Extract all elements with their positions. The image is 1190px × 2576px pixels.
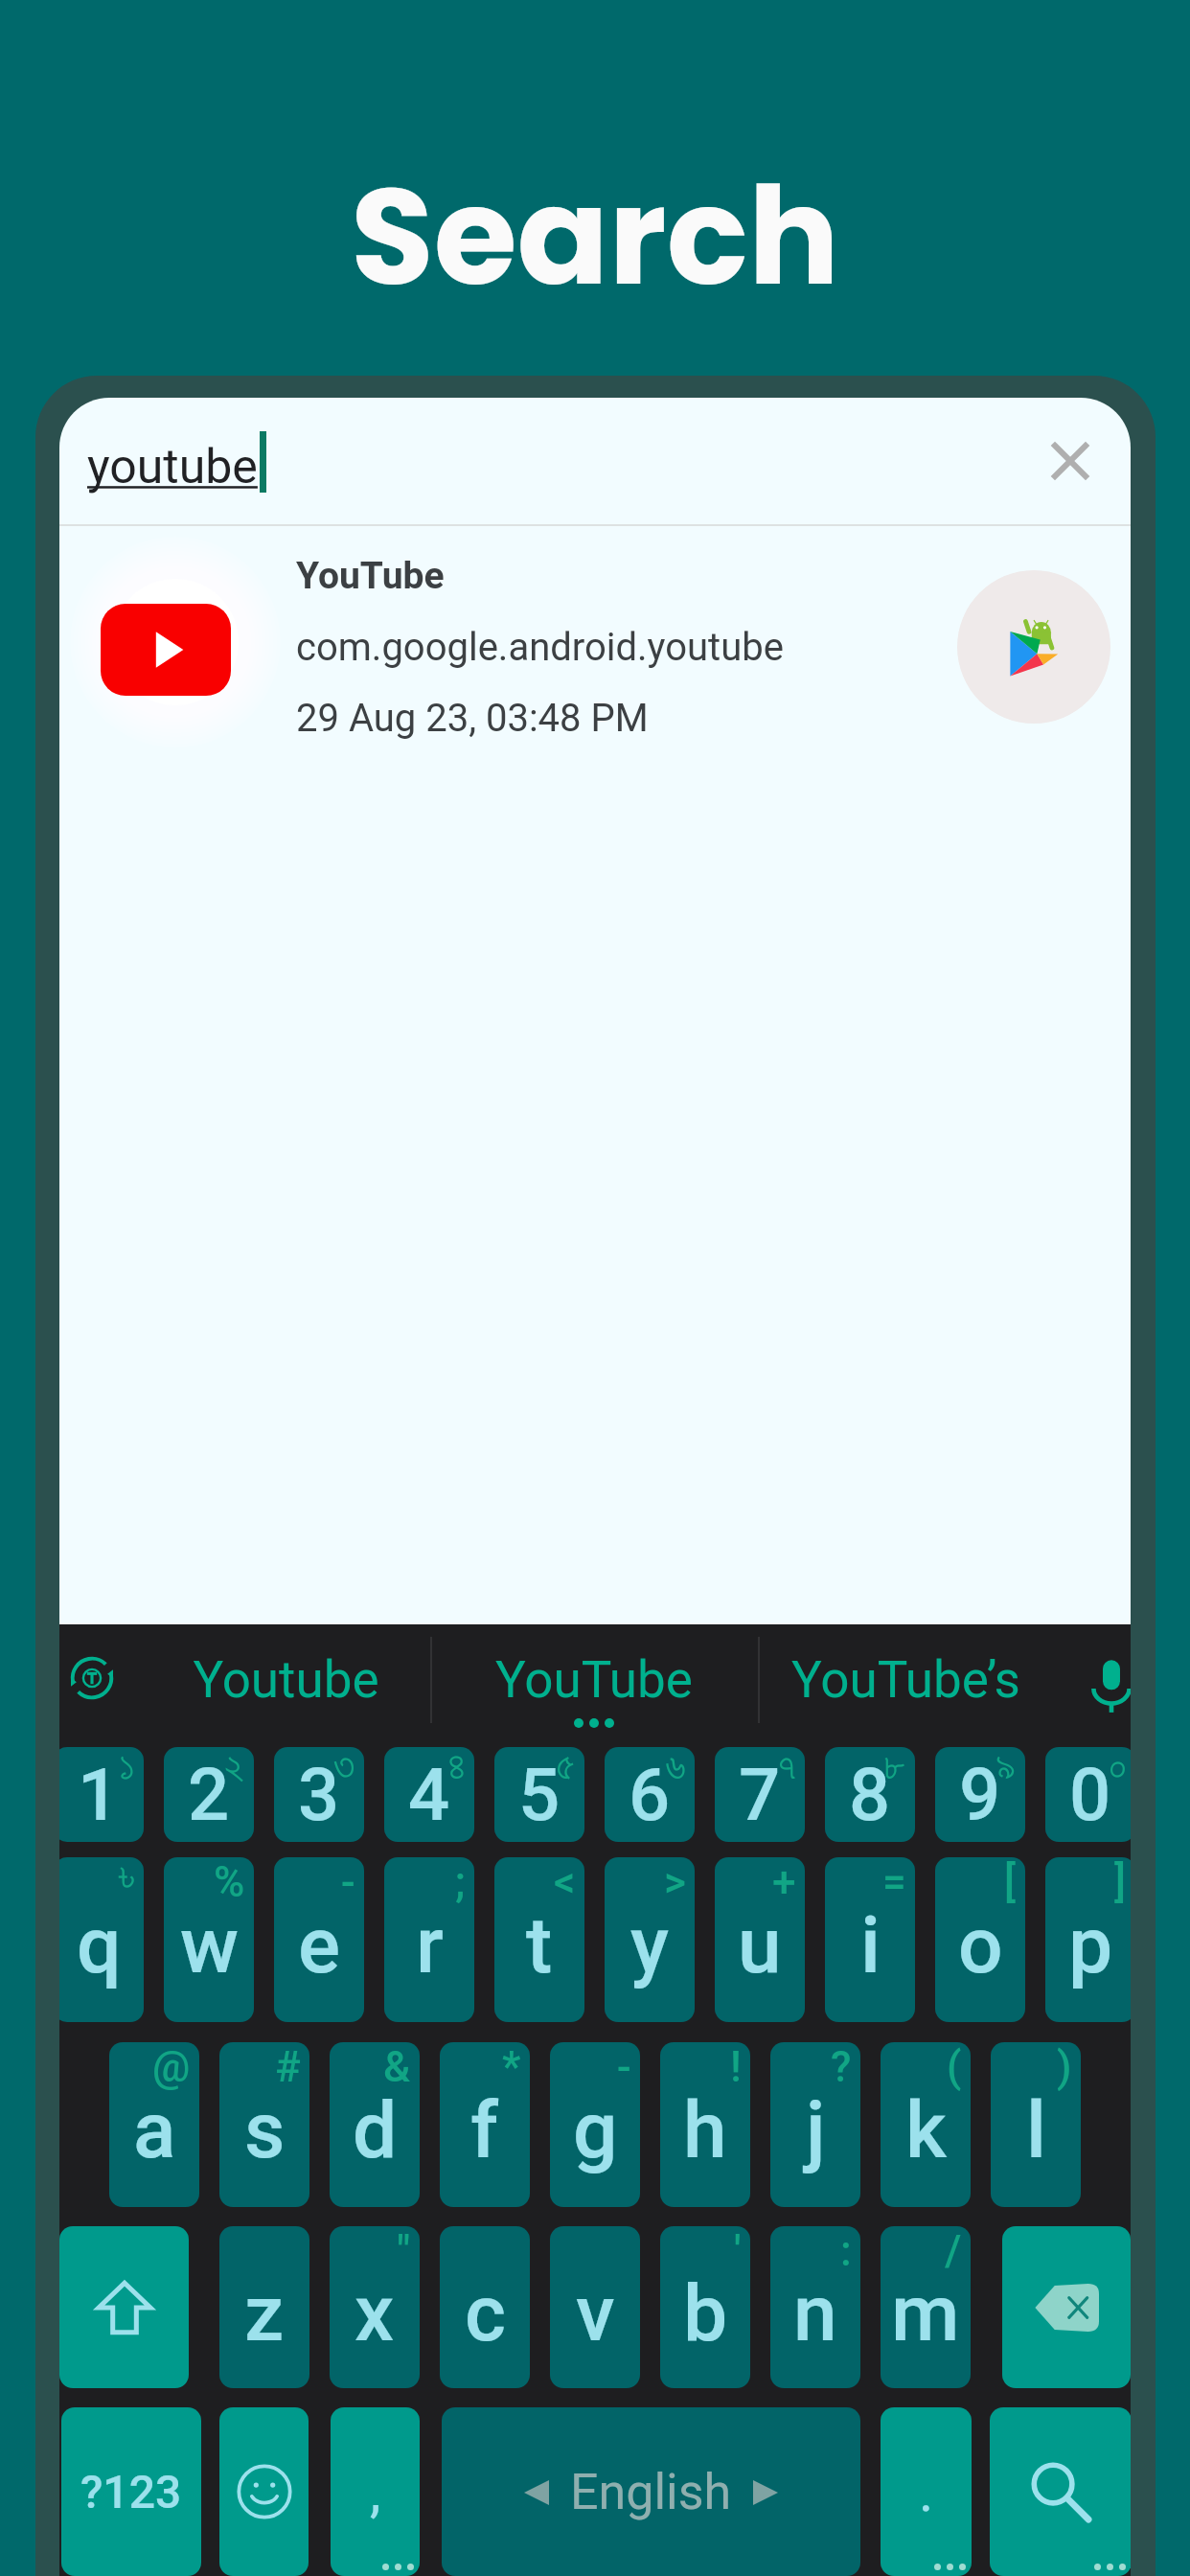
button[interactable]: ; — [384, 1857, 474, 2022]
staticText: 0 — [1069, 1752, 1111, 1837]
button[interactable]: ' — [660, 2226, 750, 2388]
staticText: Search — [351, 142, 839, 331]
staticText: p — [1068, 1899, 1113, 1991]
button[interactable]: ৳ — [59, 1857, 144, 2022]
staticText: YouTube’s — [791, 1650, 1020, 1710]
button[interactable]: Clear search — [1013, 403, 1128, 518]
staticText: 8 — [849, 1752, 891, 1837]
button[interactable]: ২ — [164, 1747, 254, 1842]
staticText: ( — [947, 2042, 962, 2092]
button[interactable]: Voice input — [1054, 1624, 1131, 1747]
button[interactable]: ( — [881, 2042, 971, 2207]
button[interactable]: ৩ — [274, 1747, 364, 1842]
staticText: ; — [455, 1857, 466, 1907]
staticText: . — [919, 2459, 934, 2524]
button[interactable]: - — [550, 2042, 640, 2207]
staticText: & — [383, 2042, 411, 2092]
button[interactable]: ৯ — [935, 1747, 1025, 1842]
button[interactable]: " — [330, 2226, 420, 2388]
staticText: com.google.android.youtube — [296, 625, 784, 670]
button[interactable]: Youtube — [182, 1624, 389, 1747]
staticText: i — [860, 1899, 881, 1991]
staticText: l — [1026, 2084, 1046, 2176]
button[interactable]: [ — [935, 1857, 1025, 2022]
button[interactable]: ] — [1045, 1857, 1131, 2022]
button[interactable]: + — [715, 1857, 805, 2022]
button[interactable]: ৬ — [605, 1747, 695, 1842]
staticText: z — [244, 2267, 285, 2359]
staticText: ?123 — [80, 2465, 182, 2518]
staticText: ' — [734, 2226, 742, 2276]
staticText: ১ — [119, 1747, 135, 1787]
button[interactable]: > — [605, 1857, 695, 2022]
staticText: ৩ — [333, 1747, 355, 1787]
button[interactable]: Shift — [59, 2226, 189, 2388]
button[interactable]: = — [825, 1857, 915, 2022]
button[interactable]: & — [330, 2042, 420, 2207]
button[interactable]: Backspace — [1002, 2226, 1131, 2388]
staticText: : — [840, 2226, 852, 2276]
staticText: d — [353, 2084, 398, 2176]
staticText: = — [882, 1857, 906, 1907]
staticText: ] — [1114, 1857, 1127, 1907]
button[interactable]: : — [770, 2226, 860, 2388]
button[interactable]: < — [494, 1857, 584, 2022]
button[interactable]: % — [164, 1857, 254, 2022]
staticText: ৳ — [119, 1857, 135, 1899]
staticText: b — [683, 2267, 728, 2359]
staticText: q — [77, 1899, 122, 1991]
staticText: ! — [730, 2042, 742, 2092]
button[interactable]: # — [219, 2042, 309, 2207]
staticText: YouTube — [495, 1650, 693, 1710]
button[interactable]: Emoji — [219, 2407, 309, 2576]
staticText: ) — [1057, 2042, 1072, 2092]
button[interactable]: youtube — [59, 398, 998, 524]
button[interactable]: ৫ — [494, 1747, 584, 1842]
button[interactable]: Open in Play Store — [957, 570, 1110, 724]
button[interactable]: ১ — [59, 1747, 144, 1842]
staticText: h — [683, 2084, 727, 2176]
button[interactable]: ) — [991, 2042, 1081, 2207]
button[interactable]: , — [331, 2407, 420, 2576]
button[interactable]: / — [881, 2226, 971, 2388]
staticText: x — [355, 2267, 395, 2359]
staticText: o — [958, 1899, 1003, 1991]
staticText: ৬ — [665, 1747, 686, 1787]
button[interactable]: YouTube — [59, 526, 1131, 768]
button[interactable]: English — [442, 2407, 860, 2576]
button[interactable]: . — [881, 2407, 972, 2576]
button[interactable]: ৮ — [825, 1747, 915, 1842]
staticText: f — [470, 2084, 499, 2176]
button[interactable]: ৭ — [715, 1747, 805, 1842]
staticText: 6 — [629, 1752, 671, 1837]
button[interactable]: Search — [990, 2407, 1131, 2576]
button[interactable]: ? — [770, 2042, 860, 2207]
button[interactable]: ০ — [1045, 1747, 1131, 1842]
button[interactable]: Translate — [59, 1624, 155, 1747]
staticText: ০ — [1109, 1747, 1127, 1787]
staticText: Youtube — [193, 1650, 379, 1710]
button[interactable]: @ — [109, 2042, 199, 2207]
staticText: 7 — [739, 1752, 781, 1837]
staticText: " — [397, 2226, 411, 2276]
staticText: ৭ — [778, 1747, 796, 1787]
button[interactable]: ! — [660, 2042, 750, 2207]
staticText: , — [370, 2459, 381, 2524]
button[interactable]: - — [274, 1857, 364, 2022]
button[interactable]: YouTube’s — [760, 1624, 1051, 1747]
staticText: youtube — [87, 439, 258, 495]
button[interactable]: YouTube — [432, 1624, 756, 1747]
staticText: ৫ — [556, 1747, 576, 1787]
button[interactable]: z — [219, 2226, 309, 2388]
button[interactable]: * — [440, 2042, 530, 2207]
staticText: a — [133, 2084, 176, 2176]
staticText: 9 — [959, 1752, 1001, 1837]
button[interactable]: v — [550, 2226, 640, 2388]
staticText: YouTube — [296, 554, 445, 598]
staticText: ৯ — [995, 1747, 1017, 1787]
button[interactable]: c — [440, 2226, 530, 2388]
button[interactable]: ?123 — [61, 2407, 201, 2576]
staticText: [ — [1004, 1857, 1017, 1907]
staticText: j — [806, 2084, 826, 2176]
button[interactable]: ৪ — [384, 1747, 474, 1842]
